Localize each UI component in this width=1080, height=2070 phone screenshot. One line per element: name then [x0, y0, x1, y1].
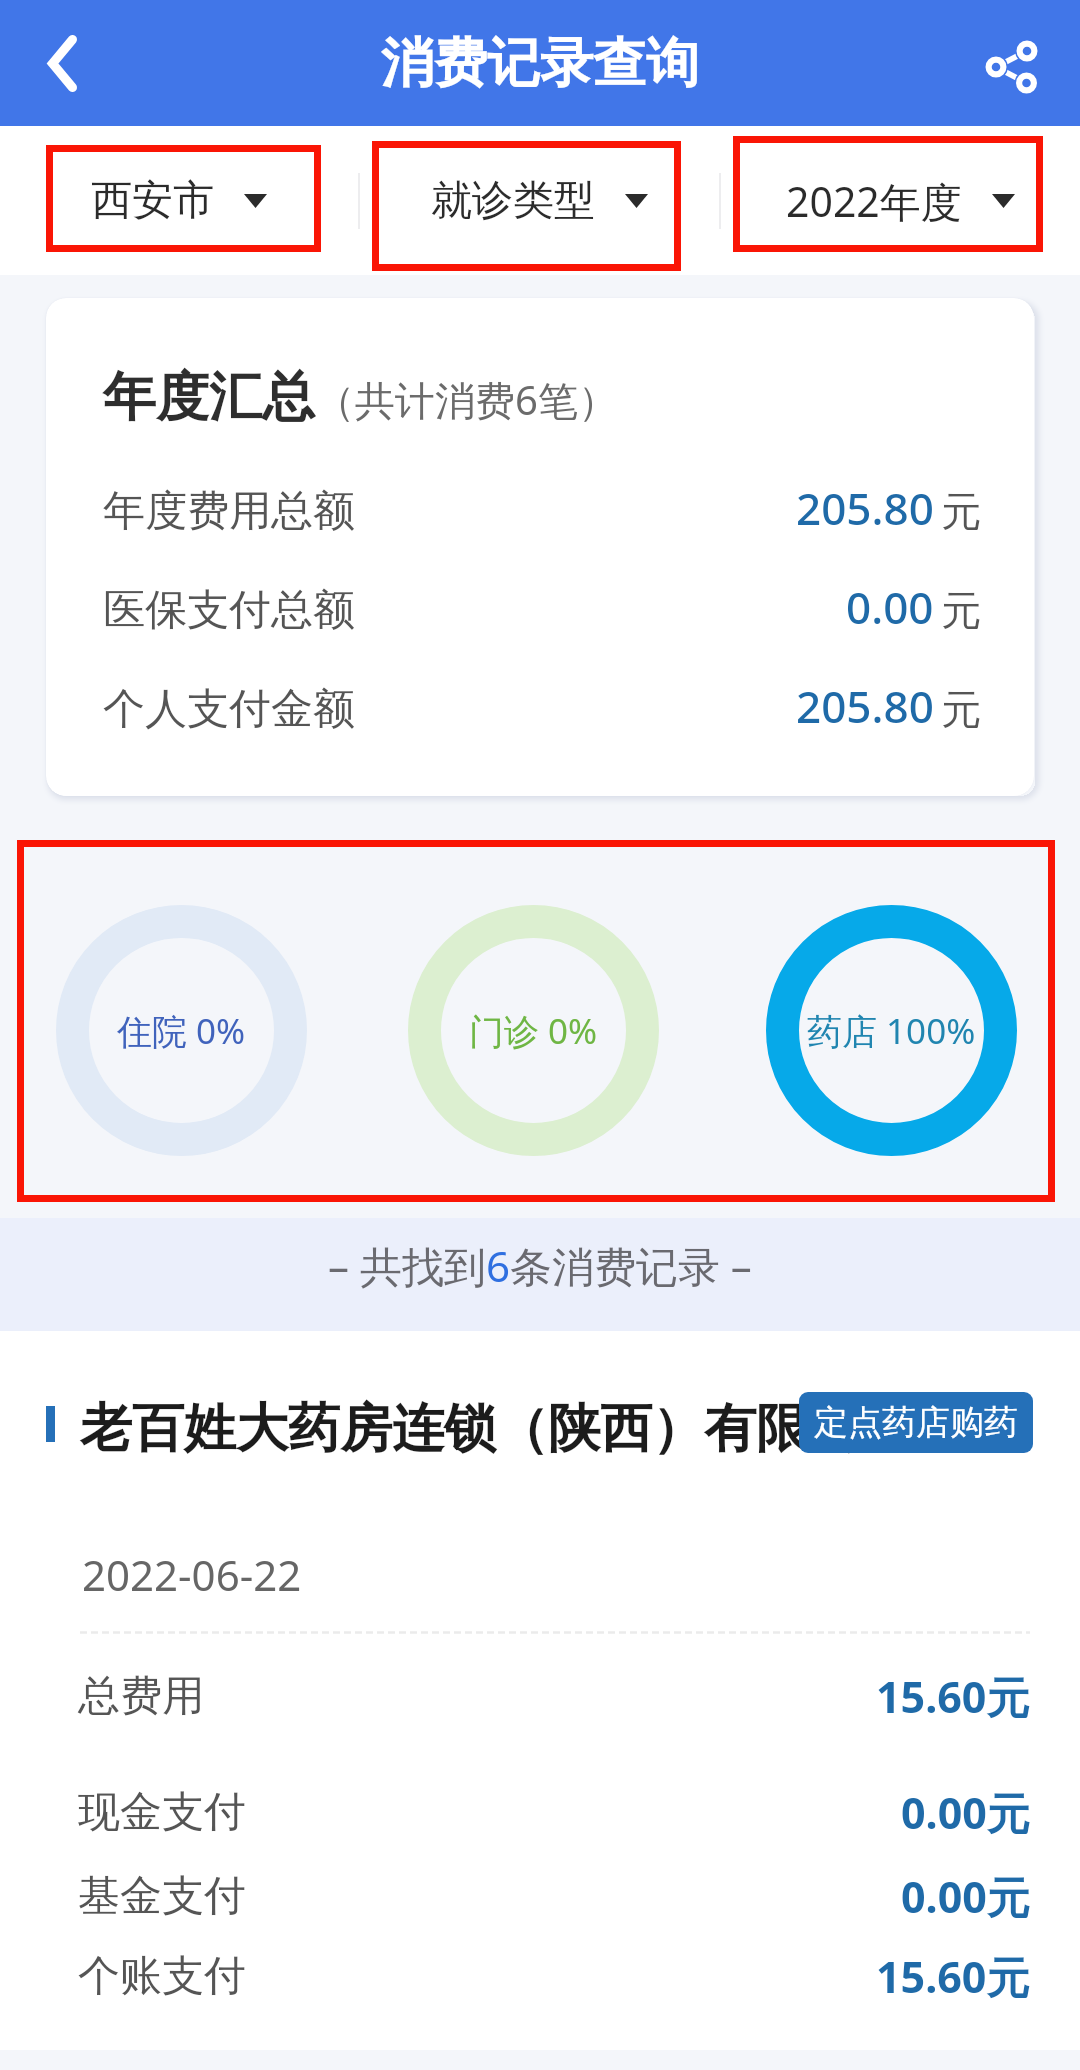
staticText: 元	[941, 486, 981, 536]
staticText: 0.00	[846, 577, 934, 637]
staticText: 门诊 0%	[469, 1007, 598, 1055]
button[interactable]: 定点药店购药	[799, 1392, 1033, 1453]
staticText: 2022年度	[786, 173, 962, 229]
staticText: 0.00元	[901, 1867, 1030, 1926]
staticText: 205.80	[796, 478, 934, 538]
staticText: 总费用	[78, 1670, 204, 1723]
staticText: 老百姓大药房连锁（陕西）有限公司	[80, 1396, 912, 1462]
staticText: 基金支付	[78, 1870, 246, 1923]
staticText: 元	[941, 684, 981, 734]
button[interactable]: 住院 0%	[56, 905, 307, 1156]
staticText: （共计消费6笔）	[315, 372, 618, 427]
staticText: 元	[941, 585, 981, 635]
staticText: 205.80	[796, 676, 934, 736]
staticText: 个人支付金额	[103, 683, 355, 736]
staticText: 个账支付	[78, 1950, 246, 2003]
staticText: 住院 0%	[117, 1007, 246, 1055]
staticText: 现金支付	[78, 1786, 246, 1839]
button[interactable]: 老百姓大药房连锁（陕西）有限公司	[0, 1331, 1080, 2050]
staticText: 定点药店购药	[814, 1401, 1018, 1444]
button[interactable]: Back	[0, 0, 125, 126]
staticText: 15.60元	[876, 1667, 1030, 1726]
staticText: – 共找到6条消费记录 –	[328, 1237, 752, 1294]
staticText: 15.60元	[876, 1947, 1030, 2006]
staticText: 年度汇总	[103, 364, 315, 431]
button[interactable]: 西安市	[0, 126, 358, 275]
button[interactable]: 就诊类型	[360, 126, 719, 275]
staticText: 药店 100%	[807, 1007, 976, 1055]
staticText: 2022-06-22	[82, 1546, 302, 1603]
staticText: 消费记录查询	[381, 30, 699, 97]
button[interactable]: 2022年度	[721, 126, 1080, 275]
staticText: 就诊类型	[431, 175, 595, 227]
staticText: 医保支付总额	[103, 584, 355, 637]
button[interactable]: 门诊 0%	[408, 905, 659, 1156]
staticText: 0.00元	[901, 1783, 1030, 1842]
staticText: 西安市	[91, 175, 214, 227]
button[interactable]: Share	[942, 0, 1080, 126]
button[interactable]: 药店 100%	[766, 905, 1017, 1156]
staticText: 年度费用总额	[103, 485, 355, 538]
